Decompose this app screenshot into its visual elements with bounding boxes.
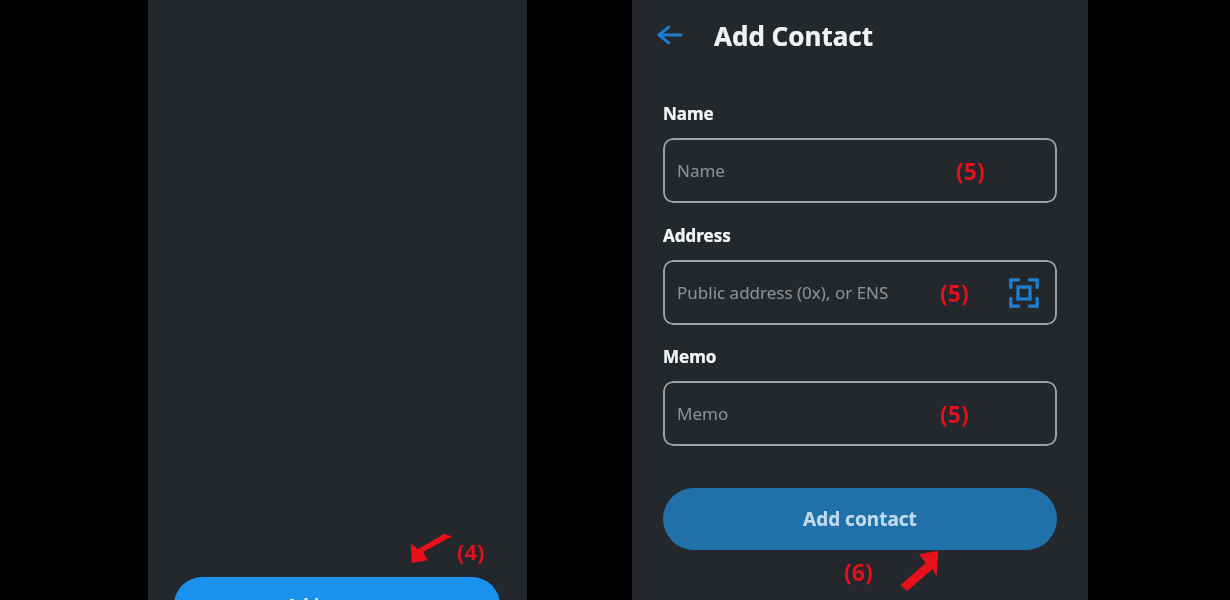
button[interactable]: Back	[648, 13, 692, 57]
button[interactable]: Public address (0x), or ENS	[663, 260, 1057, 325]
staticText: Address	[663, 224, 731, 247]
staticText: Memo	[677, 402, 729, 425]
button[interactable]: Scan QR code	[1007, 276, 1041, 310]
staticText: Add contact	[803, 506, 917, 532]
staticText: Add contact	[286, 594, 388, 600]
staticText: Name	[677, 159, 725, 182]
staticText: (6)	[844, 556, 873, 587]
button[interactable]: Add contact	[174, 577, 500, 600]
button[interactable]: Memo	[663, 381, 1057, 446]
staticText: Name	[663, 102, 714, 125]
staticText: Add Contact	[714, 18, 874, 53]
staticText: (5)	[940, 277, 969, 308]
button[interactable]: Name	[663, 138, 1057, 203]
staticText: (5)	[956, 155, 985, 186]
staticText: Memo	[663, 345, 717, 368]
staticText: (4)	[457, 536, 485, 566]
staticText: (5)	[940, 398, 969, 429]
staticText: Public address (0x), or ENS	[677, 281, 889, 304]
button[interactable]: Add contact	[663, 488, 1057, 550]
